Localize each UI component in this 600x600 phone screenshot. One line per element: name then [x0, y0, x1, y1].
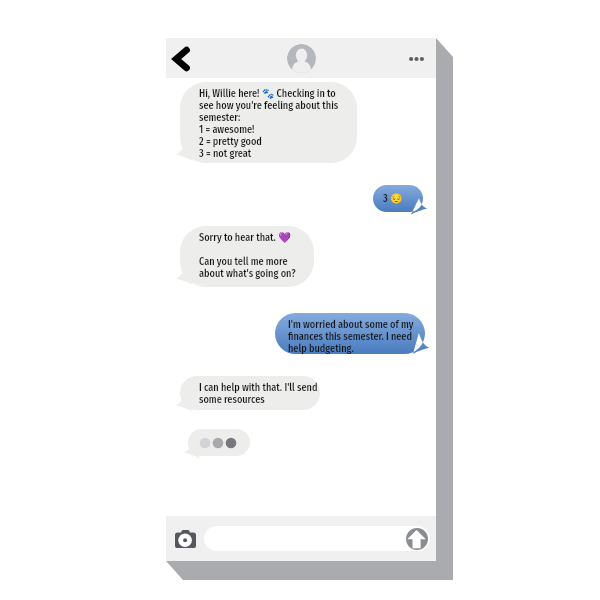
staticText: some resources: [199, 393, 265, 405]
button[interactable]: Typing indicator: [188, 429, 260, 461]
staticText: 2 = pretty good: [199, 135, 262, 147]
button[interactable]: Back: [166, 39, 196, 78]
button[interactable]: 3 😔: [373, 185, 423, 212]
button[interactable]: Hi, Willie here! 🐾 Checking in to: [180, 82, 357, 163]
staticText: Hi, Willie here! 🐾 Checking in to: [199, 87, 336, 99]
staticText: Can you tell me more: [199, 255, 288, 267]
staticText: semester:: [199, 111, 241, 123]
staticText: 3 = not great: [199, 147, 252, 159]
staticText: I'm worried about some of my: [288, 318, 414, 330]
staticText: see how you're feeling about this: [199, 99, 339, 111]
staticText: 3 😔: [383, 192, 403, 204]
staticText: finances this semester. I need: [288, 330, 412, 342]
staticText: help budgeting.: [288, 342, 354, 354]
staticText: 1 = awesome!: [199, 123, 255, 135]
button[interactable]: [204, 526, 430, 551]
staticText: Sorry to hear that. 💜: [199, 231, 291, 243]
button[interactable]: Camera: [170, 524, 200, 554]
button[interactable]: More options: [396, 39, 436, 78]
button[interactable]: Contact profile: [287, 44, 316, 73]
button[interactable]: I can help with that. I'll send: [180, 376, 320, 410]
button[interactable]: I'm worried about some of my: [275, 313, 425, 354]
button[interactable]: Send: [406, 528, 428, 550]
staticText: I can help with that. I'll send: [199, 381, 318, 393]
button[interactable]: Sorry to hear that. 💜: [180, 226, 314, 287]
staticText: about what's going on?: [199, 267, 296, 279]
